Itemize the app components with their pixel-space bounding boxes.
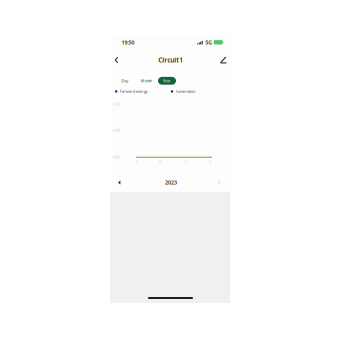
- staticText: 0: [135, 160, 137, 164]
- button[interactable]: Day: [117, 76, 133, 85]
- staticText: 18: [208, 160, 212, 164]
- staticText: Month: [141, 78, 152, 83]
- staticText: Generation: [176, 88, 195, 94]
- staticText: 0.01: [113, 154, 120, 160]
- button[interactable]: Next year: [214, 177, 225, 188]
- staticText: 0.02: [113, 128, 120, 133]
- staticText: Year: [163, 78, 171, 83]
- staticText: 2023: [165, 179, 177, 186]
- staticText: Forward energy: [119, 88, 147, 94]
- staticText: 0.03: [113, 101, 120, 107]
- staticText: 5G: [205, 39, 212, 46]
- button[interactable]: Month: [137, 76, 155, 85]
- staticText: 12: [184, 160, 188, 164]
- button[interactable]: Year: [158, 77, 176, 85]
- button[interactable]: Edit: [217, 54, 229, 66]
- button[interactable]: Previous year: [114, 177, 125, 188]
- staticText: Day: [121, 78, 128, 83]
- staticText: 06: [159, 160, 163, 164]
- staticText: 19:50: [121, 39, 134, 46]
- button[interactable]: Back: [111, 54, 123, 66]
- staticText: Circuit1: [158, 56, 183, 64]
